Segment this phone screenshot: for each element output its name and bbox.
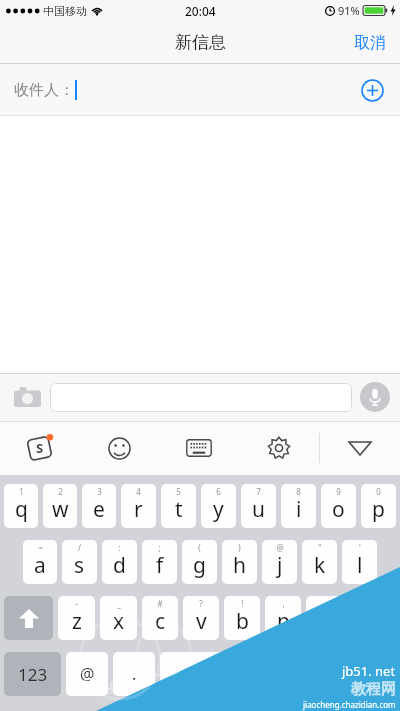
staticText: u	[252, 495, 265, 524]
staticText: ...	[321, 598, 328, 609]
button[interactable]: ~	[23, 540, 57, 584]
staticText: 20:04	[185, 3, 216, 19]
button[interactable]	[50, 383, 352, 412]
staticText: n	[277, 607, 290, 636]
button[interactable]: ;	[142, 540, 177, 584]
staticText: /	[78, 542, 81, 553]
staticText: ,	[282, 598, 285, 609]
staticText: b	[236, 607, 249, 636]
button[interactable]: "	[302, 540, 337, 584]
button[interactable]: .com	[160, 652, 223, 696]
staticText: jb51. net	[342, 662, 396, 680]
staticText: :	[118, 542, 121, 553]
button[interactable]: 6	[201, 484, 236, 528]
button[interactable]: Settings	[239, 421, 319, 475]
staticText: j	[277, 551, 283, 580]
staticText: @	[80, 663, 95, 685]
staticText: jiaocheng.chazidian.com	[303, 699, 396, 710]
button[interactable]: !	[224, 596, 260, 640]
staticText: 查字典	[78, 678, 123, 697]
staticText: -	[75, 598, 78, 609]
staticText: 收件人：	[14, 81, 74, 100]
button[interactable]: Voice message	[360, 382, 390, 412]
staticText: 91%	[338, 3, 360, 18]
staticText: y	[213, 495, 224, 524]
button[interactable]: @	[262, 540, 297, 584]
staticText: #	[157, 598, 163, 609]
staticText: t	[175, 495, 183, 524]
staticText: g	[193, 551, 206, 580]
staticText: 1	[19, 486, 24, 497]
staticText: 4	[136, 486, 141, 497]
button[interactable]: '	[342, 540, 377, 584]
button[interactable]: Add contact	[355, 73, 389, 107]
staticText: 0	[376, 486, 381, 497]
staticText: '	[359, 542, 361, 553]
staticText: v	[196, 607, 207, 636]
button[interactable]: _	[100, 596, 137, 640]
staticText: 9	[336, 486, 341, 497]
staticText: i	[296, 495, 302, 524]
button[interactable]: -	[58, 596, 95, 640]
staticText: x	[113, 607, 125, 636]
button[interactable]: :	[102, 540, 137, 584]
button[interactable]: Camera	[10, 380, 44, 414]
button[interactable]: 取消	[340, 21, 400, 64]
staticText: 3	[97, 486, 102, 497]
button[interactable]: Hide keyboard	[320, 421, 400, 475]
staticText: 6	[216, 486, 221, 497]
button[interactable]: #	[142, 596, 178, 640]
staticText: .com	[173, 663, 210, 685]
button[interactable]: Sogou input	[0, 421, 79, 475]
staticText: ;	[158, 542, 161, 553]
button[interactable]: @	[66, 652, 108, 696]
staticText: 教程网	[351, 680, 396, 699]
button[interactable]: 4	[121, 484, 156, 528]
button[interactable]: .	[113, 652, 155, 696]
staticText: )	[238, 542, 241, 553]
staticText: ?	[199, 598, 203, 609]
button[interactable]: 2	[43, 484, 77, 528]
staticText: !	[241, 598, 244, 609]
staticText: S	[36, 439, 44, 457]
staticText: _	[117, 598, 121, 609]
button[interactable]: ?	[183, 596, 219, 640]
button[interactable]: 9	[321, 484, 356, 528]
staticText: 新信息	[175, 32, 226, 53]
staticText: 5	[176, 486, 181, 497]
staticText: w	[52, 495, 69, 524]
staticText: 2	[58, 486, 63, 497]
button[interactable]: 7	[241, 484, 276, 528]
staticText: q	[15, 495, 28, 524]
staticText: z	[72, 607, 82, 636]
staticText: "	[318, 542, 322, 553]
button[interactable]: 123	[4, 652, 61, 696]
staticText: m	[314, 607, 334, 636]
button[interactable]: )	[222, 540, 257, 584]
staticText: p	[372, 495, 385, 524]
staticText: l	[357, 551, 363, 580]
button[interactable]: Shift	[4, 596, 53, 640]
button[interactable]: ,	[265, 596, 301, 640]
staticText: .	[132, 663, 137, 685]
staticText: e	[93, 495, 105, 524]
staticText: @	[276, 542, 284, 553]
button[interactable]: 8	[281, 484, 316, 528]
button[interactable]: (	[182, 540, 217, 584]
staticText: f	[156, 551, 164, 580]
staticText: 8	[296, 486, 301, 497]
button[interactable]: Keyboard layout	[159, 421, 239, 475]
staticText: ~	[38, 542, 43, 553]
button[interactable]: 1	[4, 484, 38, 528]
button[interactable]: 0	[361, 484, 396, 528]
button[interactable]: 5	[161, 484, 196, 528]
staticText: 取消	[354, 33, 386, 53]
button[interactable]: Emoji	[79, 421, 159, 475]
button[interactable]: 3	[82, 484, 116, 528]
staticText: 中国移动	[43, 4, 87, 18]
button[interactable]: ...	[306, 596, 342, 640]
button[interactable]: /	[62, 540, 97, 584]
